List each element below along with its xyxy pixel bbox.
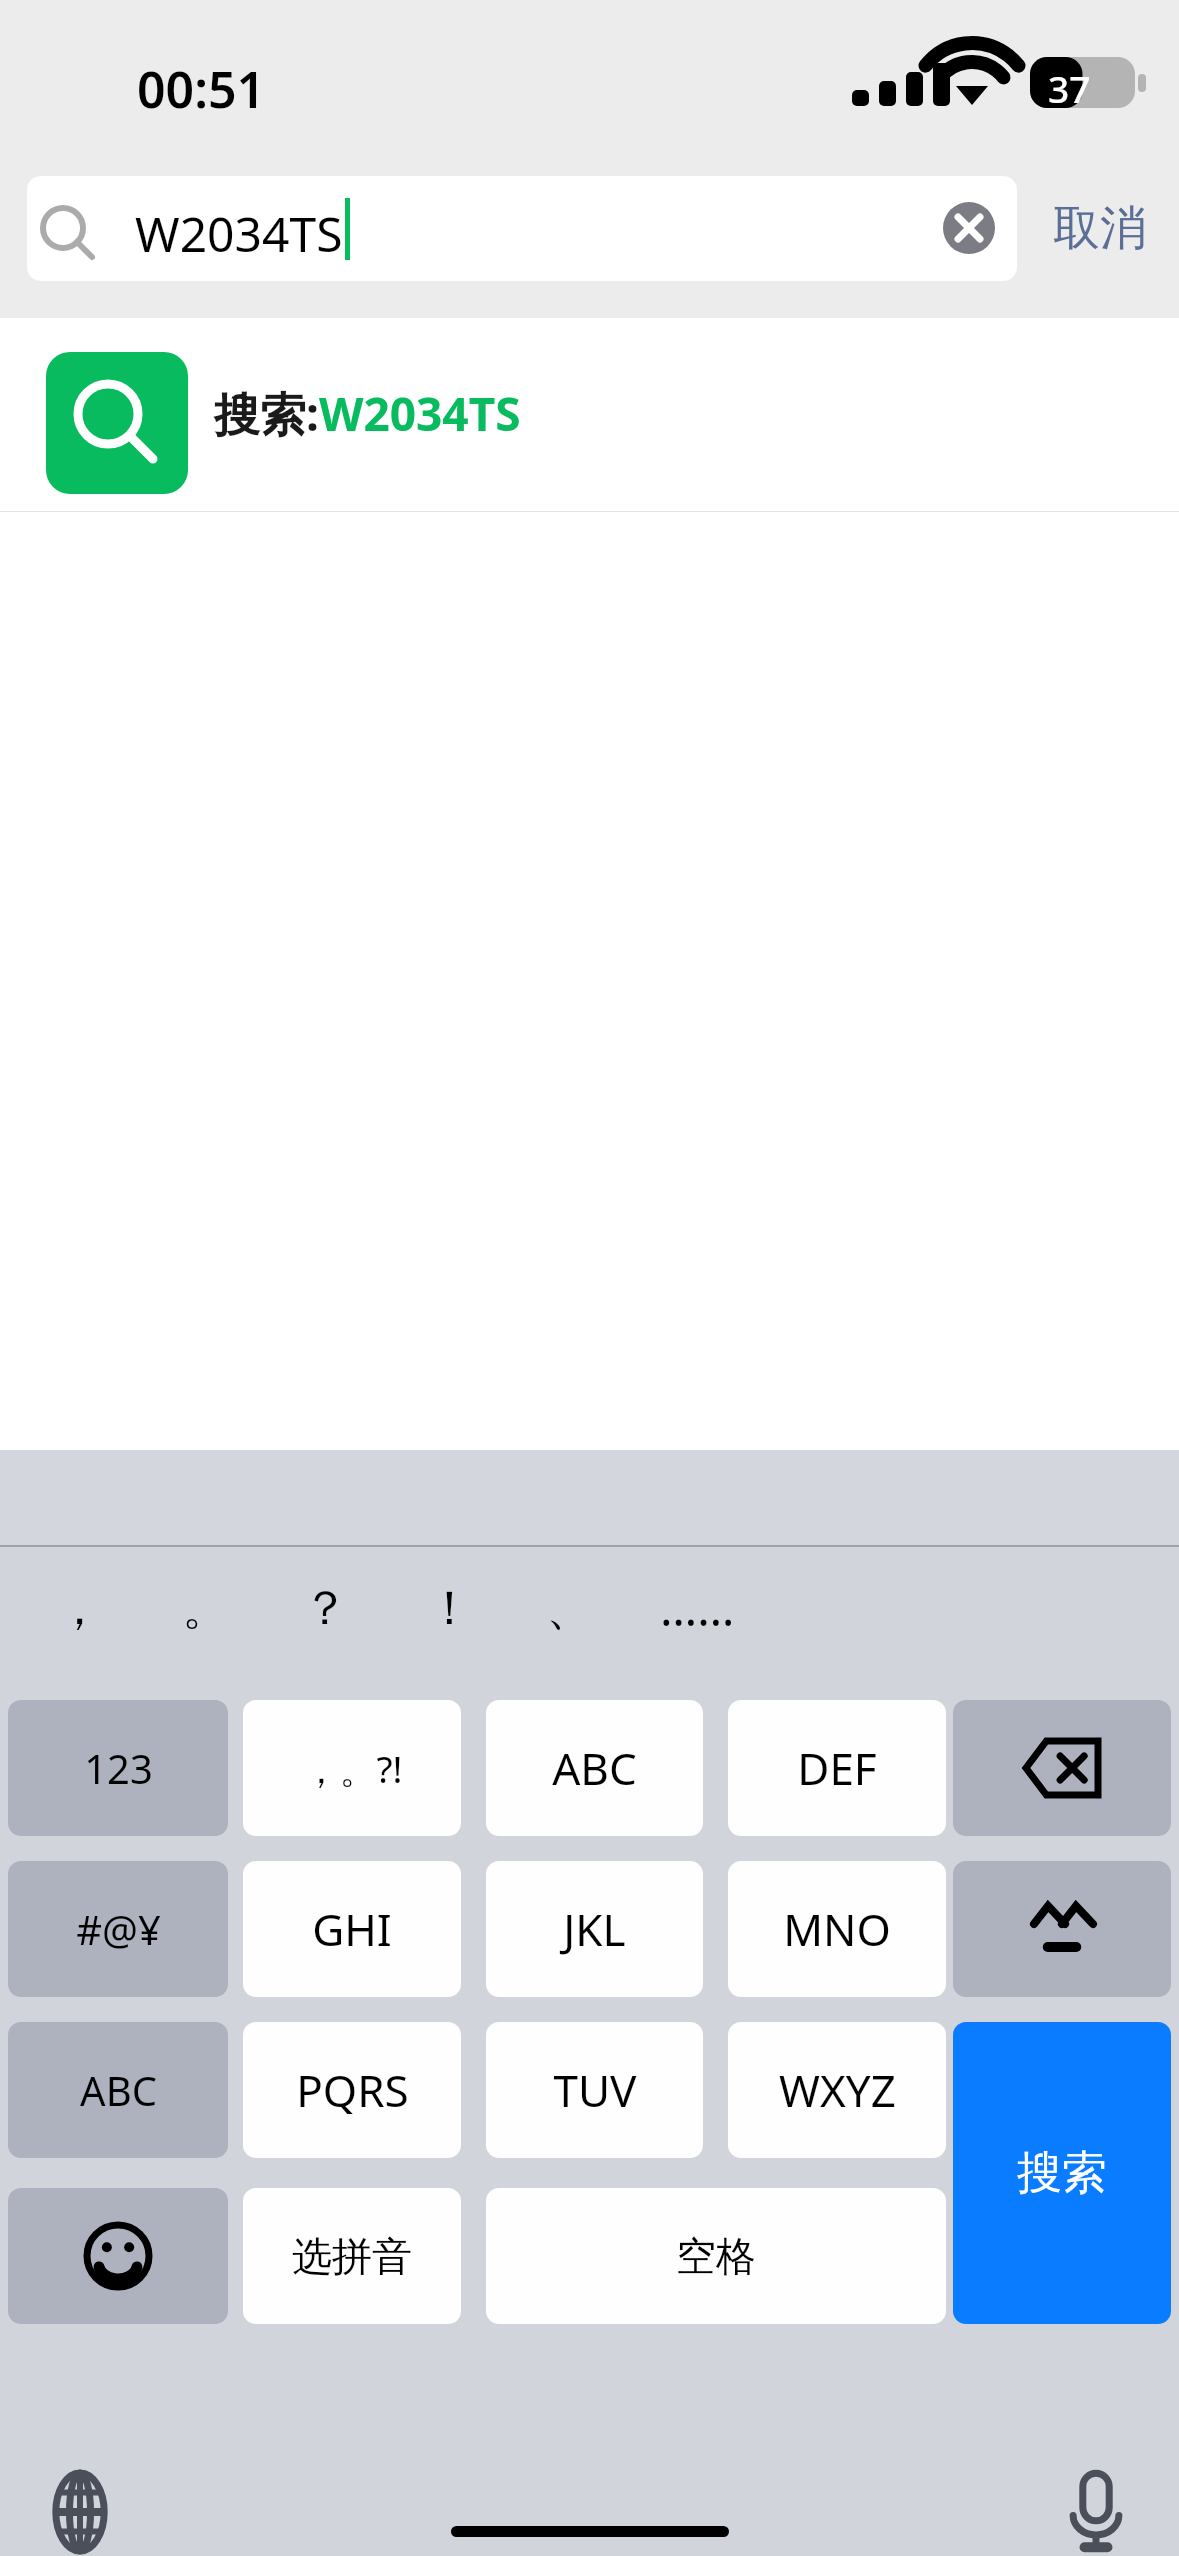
button[interactable]: 空格 [486, 2188, 946, 2324]
button[interactable]: MNO [728, 1861, 946, 1997]
button[interactable]: Emoji [8, 2188, 228, 2324]
staticText: PQRS [296, 2060, 409, 2120]
staticText: 选拼音 [292, 2231, 412, 2281]
staticText: 、 [546, 1579, 593, 1638]
staticText: #@¥ [76, 1902, 161, 1956]
staticText: …… [660, 1576, 735, 1640]
staticText: 00:51 [137, 55, 266, 123]
staticText: WXYZ [779, 2060, 896, 2120]
staticText: 。 [182, 1579, 229, 1638]
button[interactable]: 、 [512, 1558, 627, 1658]
button[interactable]: 搜索 [953, 2022, 1171, 2324]
button[interactable]: Symbols [953, 1861, 1171, 1997]
button[interactable]: ABC [486, 1700, 703, 1836]
button[interactable]: Delete [953, 1700, 1171, 1836]
staticText: 取消 [1053, 199, 1147, 258]
button[interactable]: PQRS [243, 2022, 461, 2158]
staticText: DEF [797, 1738, 877, 1798]
button[interactable]: ？ [268, 1558, 383, 1658]
button[interactable]: GHI [243, 1861, 461, 1997]
button[interactable]: Switch keyboard [36, 2468, 124, 2556]
staticText: 37 [1048, 63, 1091, 113]
staticText: 搜索:W2034TS [214, 382, 521, 445]
button[interactable]: W2034TS [27, 176, 1017, 281]
staticText: TUV [553, 2060, 637, 2120]
staticText: GHI [312, 1899, 392, 1959]
staticText: JKL [563, 1899, 626, 1959]
staticText: 搜索 [1017, 2145, 1107, 2202]
button[interactable]: JKL [486, 1861, 703, 1997]
button[interactable]: 搜索:W2034TS [0, 318, 1179, 512]
staticText: ！ [426, 1579, 473, 1638]
button[interactable]: DEF [728, 1700, 946, 1836]
button[interactable]: …… [640, 1558, 755, 1658]
button[interactable]: 。 [148, 1558, 263, 1658]
button[interactable]: Voice input [1052, 2468, 1140, 2556]
button[interactable]: ， [22, 1558, 137, 1658]
button[interactable]: ！ [392, 1558, 507, 1658]
button[interactable]: 选拼音 [243, 2188, 461, 2324]
button[interactable]: WXYZ [728, 2022, 946, 2158]
staticText: ABC [80, 2063, 157, 2117]
staticText: W2034TS [135, 201, 343, 266]
button[interactable]: #@¥ [8, 1861, 228, 1997]
staticText: 空格 [676, 2231, 756, 2281]
staticText: ， [56, 1579, 103, 1638]
button[interactable]: Clear text [943, 202, 995, 254]
button[interactable]: ABC [8, 2022, 228, 2158]
staticText: ，。?! [302, 1743, 403, 1794]
button[interactable]: 123 [8, 1700, 228, 1836]
staticText: ？ [302, 1579, 349, 1638]
staticText: MNO [783, 1899, 891, 1959]
staticText: ABC [552, 1738, 637, 1798]
button[interactable]: ，。?! [243, 1700, 461, 1836]
staticText: 123 [84, 1741, 153, 1795]
button[interactable]: 取消 [1035, 176, 1165, 281]
button[interactable]: TUV [486, 2022, 703, 2158]
